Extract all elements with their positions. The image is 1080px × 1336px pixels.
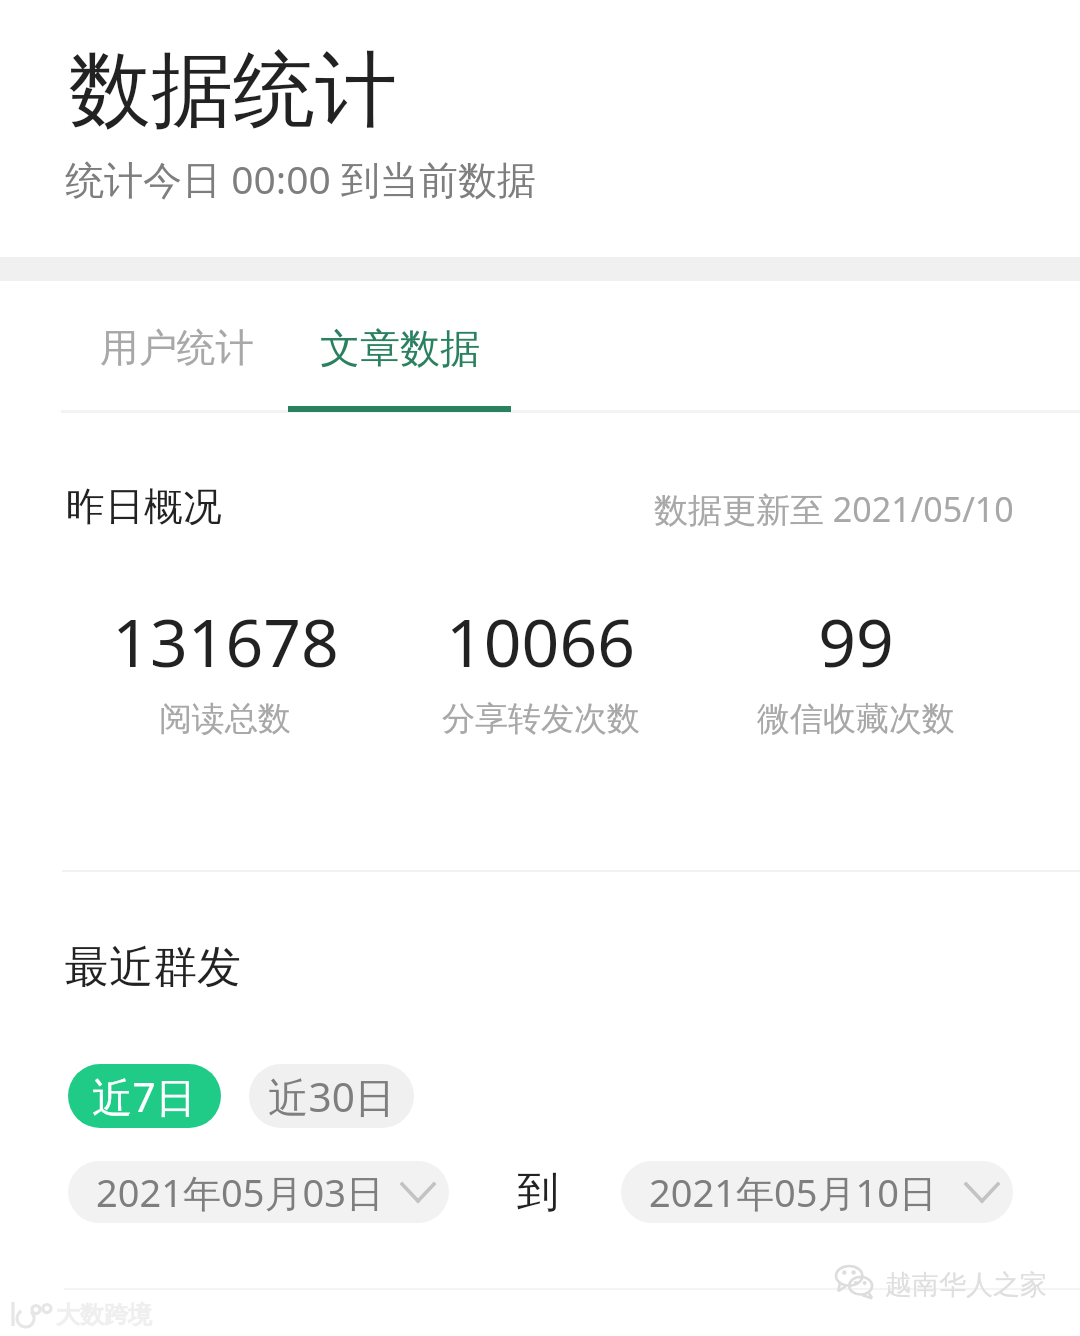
staticText: 近7日 (92, 1069, 197, 1124)
button[interactable]: 文章数据 (288, 293, 511, 412)
button[interactable]: 2021年05月10日 (621, 1161, 1013, 1223)
staticText: 越南华人之家 (885, 1268, 1047, 1302)
button[interactable]: 2021年05月03日 (68, 1161, 449, 1223)
staticText: 2021年05月10日 (649, 1166, 937, 1218)
staticText: 10066 (446, 596, 635, 686)
staticText: 阅读总数 (159, 698, 291, 740)
button[interactable]: 用户统计 (65, 293, 288, 410)
other: 大数跨境 logo (10, 1301, 52, 1327)
staticText: 昨日概况 (66, 482, 222, 531)
staticText: 到 (517, 1166, 559, 1219)
button[interactable]: 近30日 (249, 1064, 414, 1128)
staticText: 2021年05月03日 (96, 1166, 384, 1218)
other: WeChat (836, 1266, 880, 1300)
staticText: 微信收藏次数 (757, 698, 955, 740)
staticText: 用户统计 (100, 324, 254, 373)
staticText: 大数跨境 (56, 1300, 152, 1330)
staticText: 近30日 (268, 1069, 396, 1124)
staticText: 最近群发 (65, 940, 241, 995)
staticText: 分享转发次数 (442, 698, 640, 740)
other: Pick date (965, 1183, 999, 1202)
staticText: 文章数据 (320, 323, 480, 373)
staticText: 数据更新至 2021/05/10 (654, 486, 1014, 532)
staticText: 131678 (112, 596, 339, 686)
staticText: 数据统计 (69, 39, 397, 142)
staticText: 99 (818, 596, 894, 686)
staticText: 统计今日 00:00 到当前数据 (65, 152, 536, 205)
button[interactable]: 近7日 (68, 1064, 221, 1128)
other: Pick date (401, 1183, 435, 1202)
